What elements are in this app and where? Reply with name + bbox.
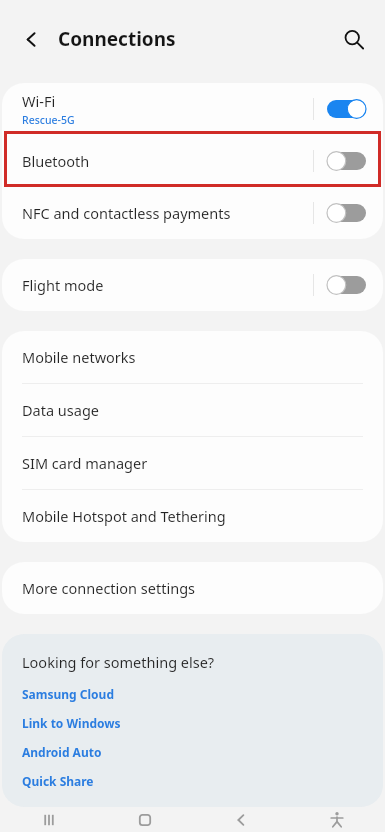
staticText: Connections [58,26,176,52]
button[interactable]: Link to Windows [22,715,363,731]
button[interactable]: Android Auto [22,744,363,760]
staticText: Flight mode [22,275,104,295]
staticText: More connection settings [22,578,195,598]
button[interactable]: Search [335,21,371,57]
staticText: Looking for something else? [22,652,215,672]
button[interactable]: SIM card manager [2,437,383,489]
button[interactable]: Off [327,204,366,222]
button[interactable]: Mobile Hotspot and Tethering [2,490,383,542]
button[interactable]: Mobile networks [2,331,383,383]
staticText: NFC and contactless payments [22,203,231,223]
button[interactable]: Quick Share [22,773,363,789]
button[interactable]: Off [327,276,366,294]
staticText: Mobile Hotspot and Tethering [22,506,226,526]
button[interactable]: Recent apps [0,807,97,832]
staticText: Bluetooth [22,151,90,171]
staticText: Quick Share [22,773,94,789]
button[interactable]: Back [14,22,48,56]
button[interactable]: More connection settings [2,562,383,614]
staticText: Samsung Cloud [22,686,114,702]
button[interactable]: Home [97,807,193,832]
staticText: SIM card manager [22,453,148,473]
button[interactable]: On [327,100,366,118]
staticText: Mobile networks [22,347,136,367]
button[interactable]: Accessibility [289,807,385,832]
staticText: Android Auto [22,744,102,760]
button[interactable]: NFC and contactless payments [2,187,383,239]
staticText: Wi-Fi [22,91,56,111]
button[interactable]: Back [193,807,289,832]
staticText: Link to Windows [22,715,121,731]
button[interactable]: Data usage [2,384,383,436]
button[interactable]: Off [327,152,366,170]
staticText: Rescue-5G [22,113,75,127]
button[interactable]: Bluetooth [2,135,383,187]
button[interactable]: Flight mode [2,259,383,311]
button[interactable]: Wi-Fi [2,83,383,135]
button[interactable]: Samsung Cloud [22,686,363,702]
staticText: Data usage [22,400,99,420]
